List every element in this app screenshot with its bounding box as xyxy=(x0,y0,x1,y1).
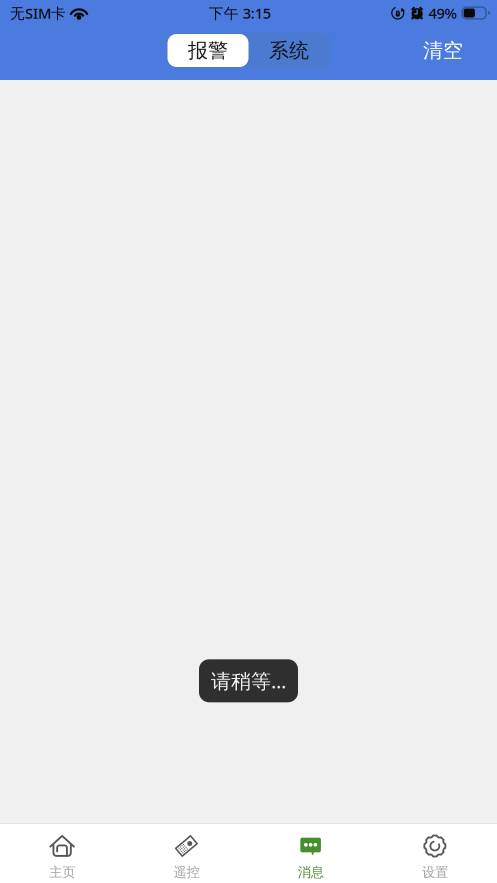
staticText: 下午 3:15 xyxy=(209,3,271,23)
staticText: 49% xyxy=(429,3,457,23)
staticText: 系统 xyxy=(269,38,309,63)
button[interactable]: 遥控 xyxy=(124,824,248,883)
staticText: 主页 xyxy=(49,864,75,880)
staticText: 遥控 xyxy=(173,864,199,880)
button[interactable]: 清空 xyxy=(407,28,497,72)
button[interactable]: 设置 xyxy=(373,824,497,883)
button[interactable]: 报警 xyxy=(167,34,248,67)
staticText: 清空 xyxy=(423,38,463,63)
staticText: 设置 xyxy=(422,864,448,880)
button[interactable]: 系统 xyxy=(248,34,329,67)
staticText: 报警 xyxy=(188,38,228,63)
staticText: 请稍等... xyxy=(211,667,286,694)
button[interactable]: 消息 xyxy=(248,824,373,883)
staticText: 无SIM卡 xyxy=(10,3,66,23)
staticText: 消息 xyxy=(298,864,324,880)
button[interactable]: 主页 xyxy=(0,824,124,883)
